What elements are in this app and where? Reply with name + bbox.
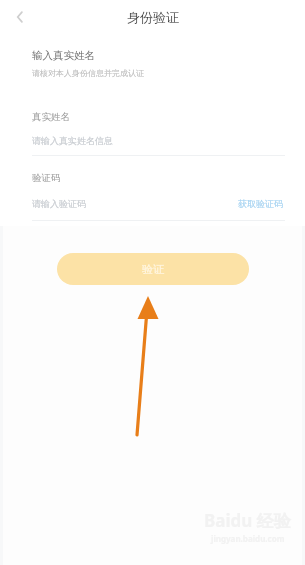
button[interactable]: 请输入真实姓名信息: [32, 135, 285, 146]
staticText: 验证: [142, 262, 164, 276]
button[interactable]: 获取验证码: [236, 196, 285, 211]
button[interactable]: Back: [6, 3, 34, 31]
button[interactable]: 请输入验证码: [32, 198, 236, 209]
staticText: 验证码: [32, 172, 61, 184]
staticText: 请核对本人身份信息并完成认证: [32, 68, 144, 78]
staticText: 输入真实姓名: [32, 49, 95, 62]
button[interactable]: 验证: [57, 253, 249, 285]
staticText: 真实姓名: [32, 111, 70, 123]
staticText: Baidu 经验: [204, 509, 291, 532]
staticText: 获取验证码: [238, 198, 283, 209]
staticText: 请输入真实姓名信息: [32, 135, 113, 146]
staticText: 身份验证: [127, 9, 179, 25]
staticText: 请输入验证码: [32, 198, 86, 209]
staticText: jingyan.baidu.com: [211, 533, 285, 544]
